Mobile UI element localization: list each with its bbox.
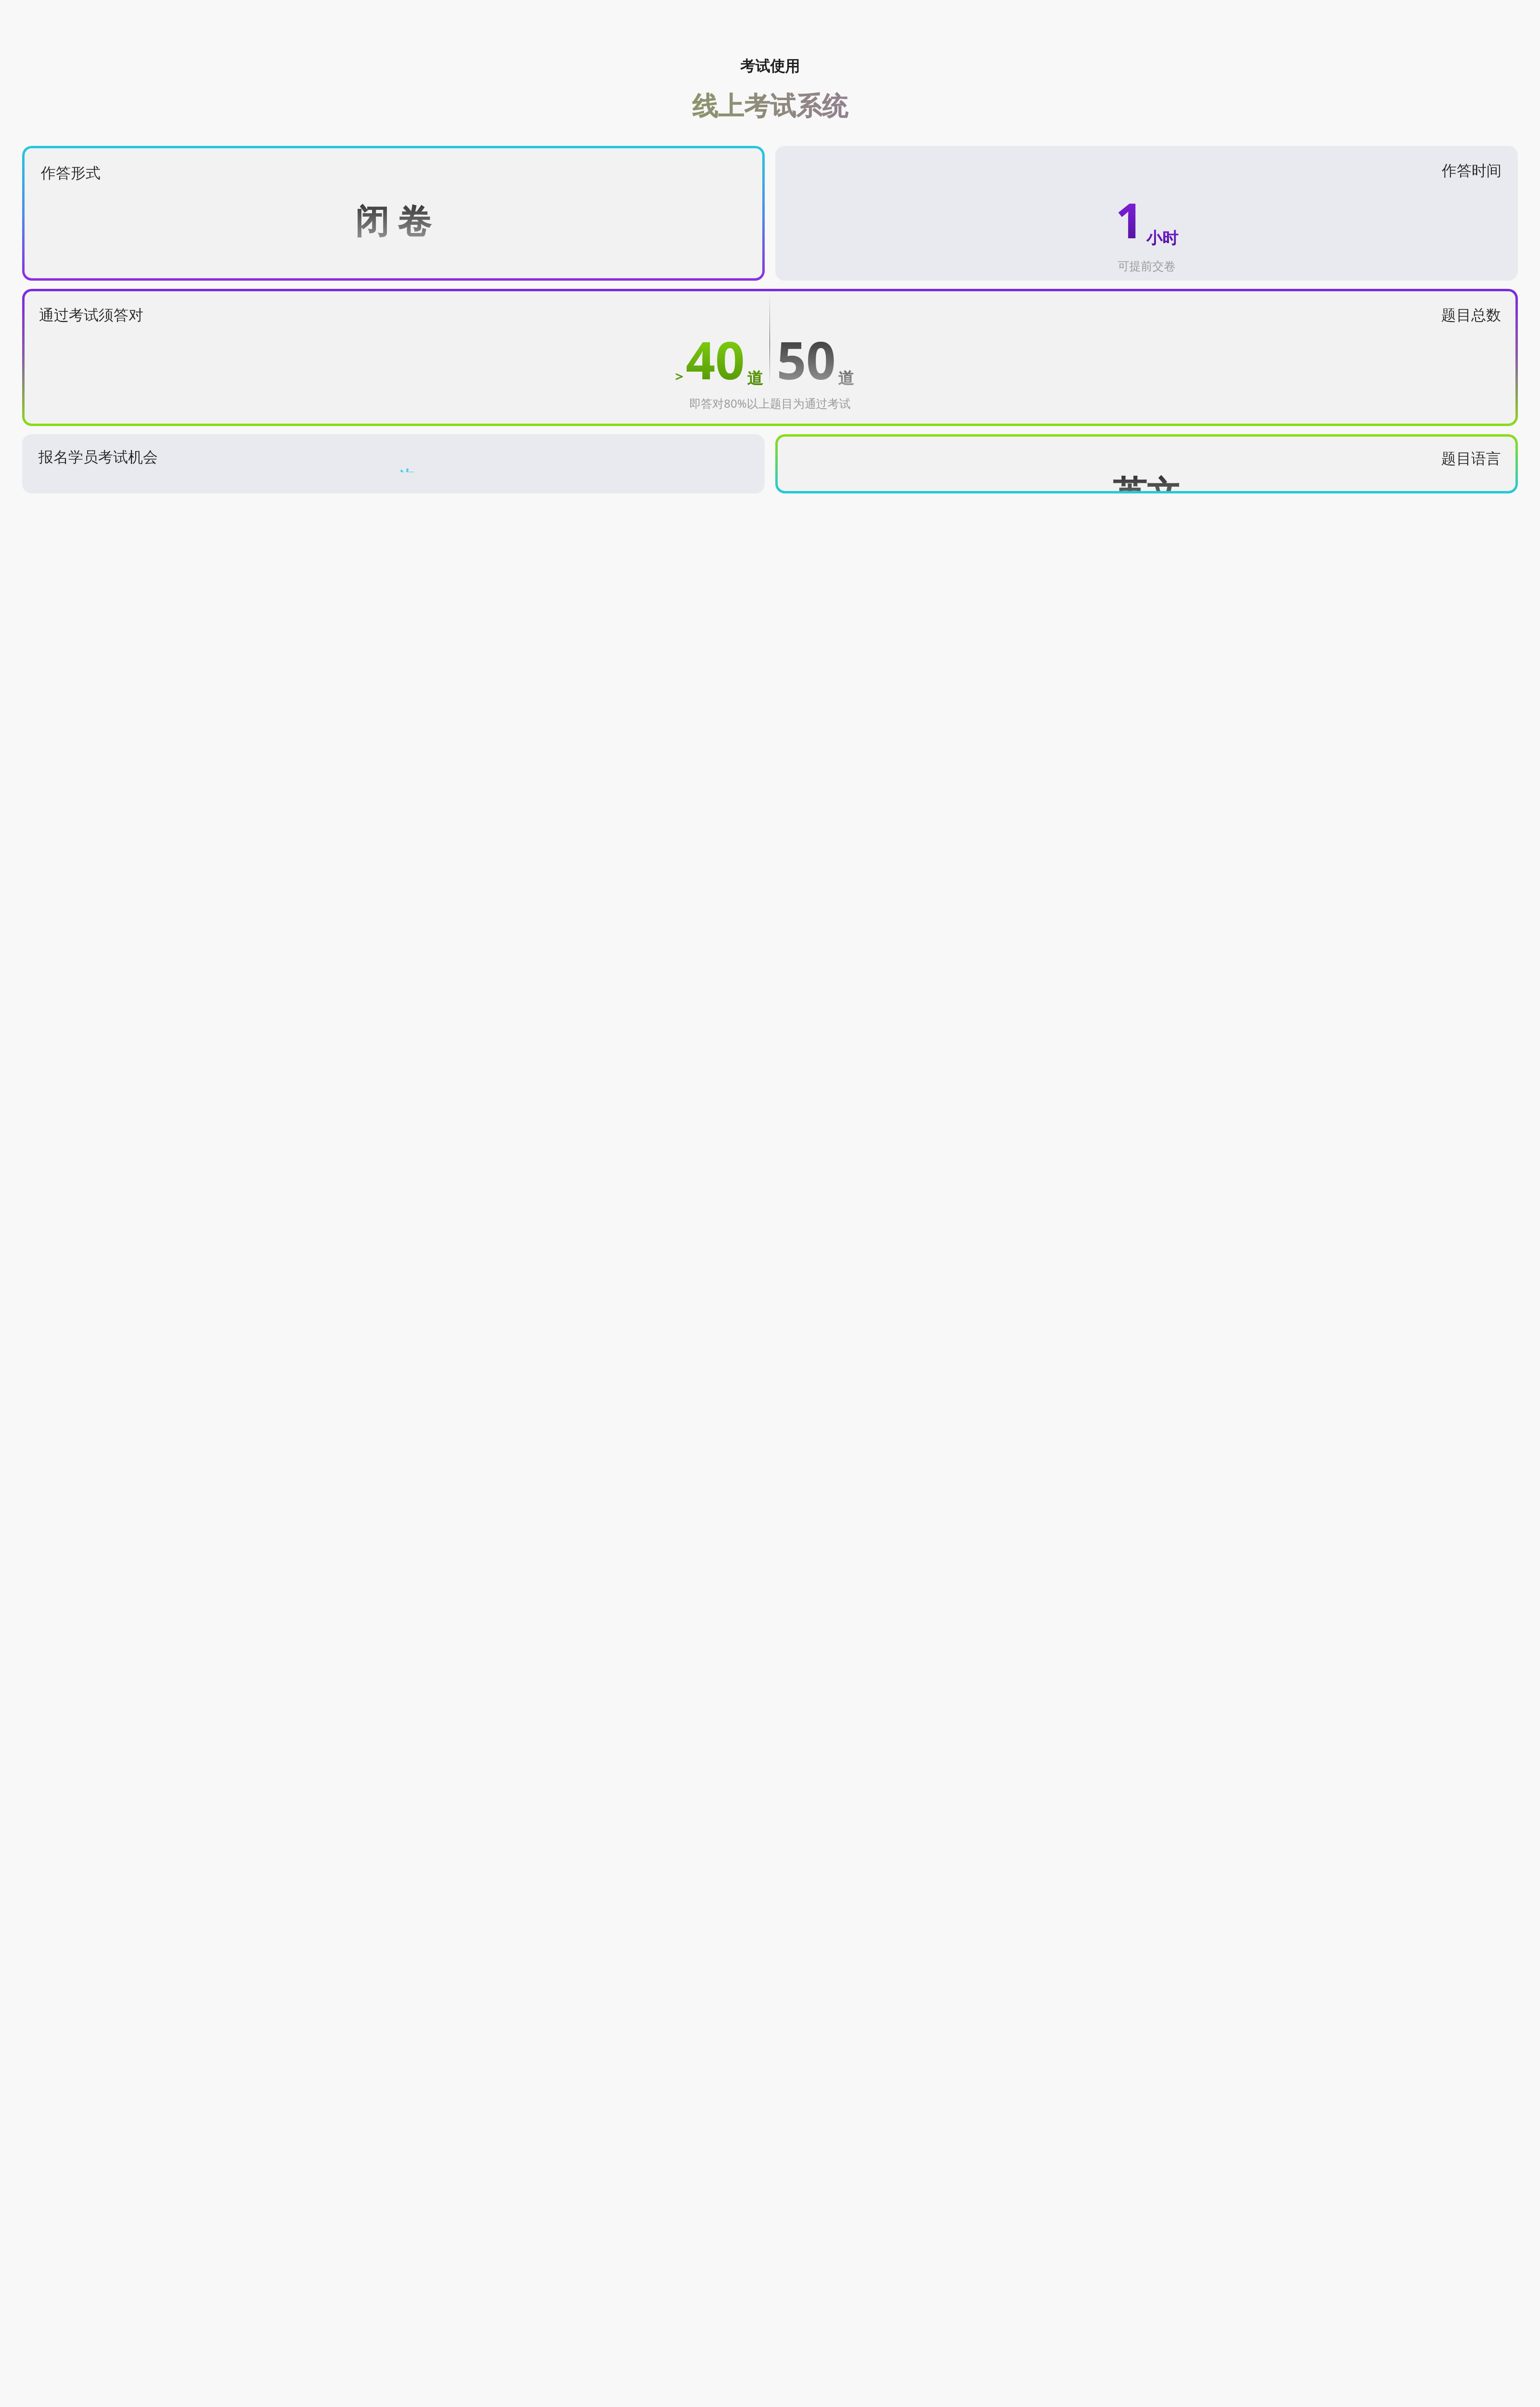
- staticText: 作答形式: [41, 164, 101, 182]
- staticText: 40: [686, 324, 745, 391]
- staticText: 小时: [1146, 228, 1178, 248]
- staticText: 50: [777, 324, 836, 391]
- staticText: 1: [1116, 187, 1143, 252]
- staticText: 通过考试须答对: [39, 306, 143, 324]
- staticText: 闭 卷: [355, 197, 432, 243]
- button[interactable]: 题目语言: [775, 434, 1518, 493]
- button[interactable]: 报名学员考试机会: [22, 434, 765, 493]
- staticText: 英文: [792, 473, 1501, 491]
- button[interactable]: 作答时间: [775, 146, 1518, 281]
- staticText: 即答对80%以上题目为通过考试: [25, 395, 1515, 411]
- staticText: 题目总数: [777, 306, 1501, 324]
- staticText: 报名学员考试机会: [38, 448, 158, 466]
- staticText: 考试使用: [0, 57, 1540, 76]
- staticText: 可提前交卷: [792, 259, 1501, 273]
- staticText: 题目语言: [792, 449, 1501, 468]
- button[interactable]: 通过考试须答对: [22, 289, 1518, 426]
- staticText: ＞: [672, 368, 686, 385]
- staticText: 次: [399, 466, 415, 472]
- staticText: 道: [838, 368, 854, 388]
- staticText: 道: [747, 368, 763, 388]
- staticText: 线上考试系统: [0, 90, 1540, 123]
- button[interactable]: 作答形式: [22, 146, 765, 281]
- staticText: 作答时间: [792, 161, 1501, 180]
